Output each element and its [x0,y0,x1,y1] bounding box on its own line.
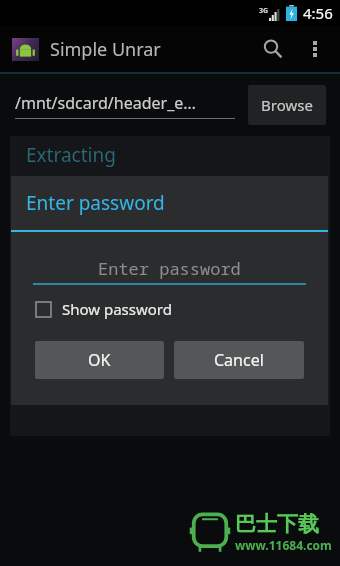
staticText: Simple Unrar [50,37,161,62]
staticText: Cancel [214,349,264,371]
staticText: OK [88,349,111,371]
button[interactable]: Enter password [33,256,306,285]
staticText: Enter password [26,190,165,216]
staticText: www.11684.com [235,537,332,553]
button[interactable]: Browse [248,85,326,125]
button[interactable]: Cancel [174,341,304,379]
staticText: Show password [62,299,172,319]
staticText: Enter password [98,257,241,280]
staticText: 4:56 [303,3,333,23]
button[interactable]: OK [35,341,164,379]
staticText: 巴士下载 [235,511,319,537]
button[interactable]: /mnt/sdcard/header_e… [15,92,235,119]
staticText: /mnt/sdcard/header_e… [15,92,196,114]
button[interactable]: More options [296,26,334,72]
staticText: Extracting [26,142,116,168]
staticText: 3G [259,6,269,16]
staticText: Browse [261,95,313,115]
button[interactable]: Search [250,26,296,72]
button[interactable]: Show password [36,299,172,319]
